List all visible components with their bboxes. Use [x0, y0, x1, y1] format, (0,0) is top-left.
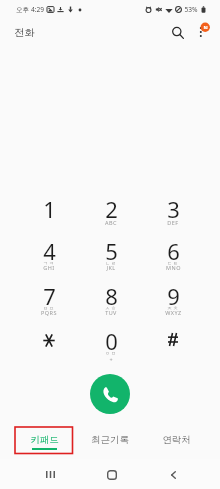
staticText: 키패드	[30, 434, 59, 446]
staticText: ㅈㅊ	[167, 305, 179, 311]
staticText: 오후 4:29	[16, 5, 44, 14]
staticText: 전화	[14, 26, 35, 39]
button[interactable]: 3	[145, 189, 201, 233]
staticText: ABC	[105, 219, 117, 226]
button[interactable]: Recent apps	[38, 462, 62, 486]
staticText: 0	[105, 326, 118, 356]
button[interactable]: 키패드	[11, 428, 77, 454]
staticText: 3	[167, 194, 180, 224]
staticText: 6	[167, 236, 180, 266]
button[interactable]: 9	[145, 276, 201, 320]
button[interactable]	[21, 321, 77, 365]
button[interactable]: 0	[83, 321, 139, 365]
staticText: ㄱㅋ	[43, 260, 55, 266]
button[interactable]: 7	[21, 276, 77, 320]
button[interactable]: 최근기록	[77, 428, 143, 454]
button[interactable]: Call	[90, 374, 130, 414]
button[interactable]: More options	[189, 21, 212, 44]
staticText: ㅂㅍ	[43, 305, 55, 311]
button[interactable]: 6	[145, 231, 201, 275]
button[interactable]: 5	[83, 231, 139, 275]
staticText: 9	[167, 281, 180, 311]
staticText: GHI	[43, 264, 55, 271]
staticText: 53%	[184, 5, 198, 14]
staticText: 연락처	[162, 434, 191, 446]
staticText: 7	[43, 281, 56, 311]
staticText: 최근기록	[91, 434, 129, 446]
staticText: 4	[43, 236, 56, 266]
staticText: ㅇㅁ	[105, 350, 117, 356]
button[interactable]	[145, 321, 201, 365]
button[interactable]: Back	[161, 463, 185, 487]
staticText: 1	[43, 194, 56, 224]
staticText: DEF	[167, 219, 179, 226]
button[interactable]: 2	[83, 189, 139, 233]
staticText: ㄷㅌ	[167, 260, 179, 266]
staticText: ㄴㄹ	[105, 260, 117, 266]
button[interactable]: 8	[83, 276, 139, 320]
button[interactable]: Search	[166, 21, 189, 44]
button[interactable]: 연락처	[143, 428, 209, 454]
staticText: MNO	[166, 264, 181, 271]
staticText: WXYZ	[165, 309, 182, 316]
button[interactable]: 1	[21, 189, 77, 233]
staticText: 8	[105, 281, 118, 311]
staticText: 5	[105, 236, 118, 266]
staticText: PQRS	[41, 309, 57, 316]
button[interactable]: 4	[21, 231, 77, 275]
staticText: N	[203, 24, 208, 29]
staticText: ㅅㅎ	[105, 305, 117, 311]
staticText: +	[109, 356, 113, 363]
staticText: JKL	[106, 264, 116, 271]
staticText: 2	[105, 194, 118, 224]
button[interactable]: Home	[100, 463, 124, 487]
staticText: TUV	[105, 309, 117, 316]
